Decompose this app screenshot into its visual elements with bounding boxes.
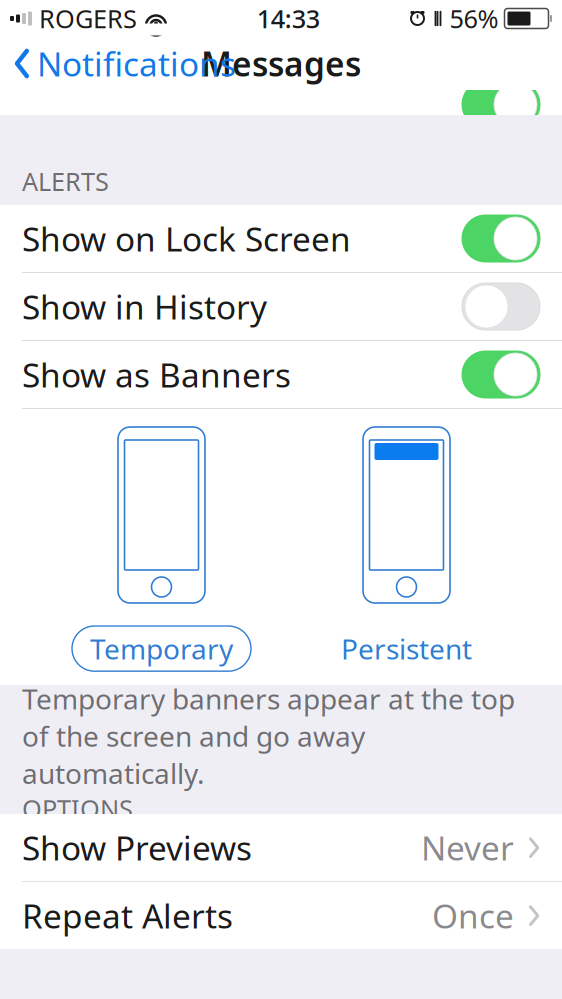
staticText: Never bbox=[421, 826, 514, 870]
button[interactable]: Notifications bbox=[0, 35, 236, 92]
staticText: OPTIONS bbox=[22, 792, 133, 825]
button[interactable]: Show as Banners bbox=[0, 341, 562, 408]
staticText: Repeat Alerts bbox=[22, 894, 233, 938]
staticText: Temporary bbox=[90, 630, 233, 667]
staticText: 56% bbox=[449, 2, 498, 35]
button[interactable]: Show Previews bbox=[0, 814, 562, 881]
staticText: Show Previews bbox=[22, 826, 252, 870]
button[interactable]: Show in History bbox=[0, 273, 562, 340]
button[interactable]: Show on Lock Screen bbox=[0, 205, 562, 272]
staticText: Notifications bbox=[37, 41, 236, 86]
button[interactable]: Temporary bbox=[72, 427, 251, 671]
staticText: Temporary banners appear at the top of t… bbox=[22, 680, 515, 792]
staticText: Messages bbox=[201, 41, 361, 86]
staticText: Persistent bbox=[341, 630, 472, 667]
staticText: Show as Banners bbox=[22, 352, 291, 397]
button[interactable]: Repeat Alerts bbox=[0, 882, 562, 949]
button[interactable]: Persistent bbox=[323, 427, 490, 671]
staticText: ALERTS bbox=[22, 164, 109, 198]
staticText: Show on Lock Screen bbox=[22, 216, 351, 261]
staticText: 14:33 bbox=[257, 2, 320, 35]
staticText: ROGERS bbox=[39, 2, 137, 35]
staticText: Show in History bbox=[22, 284, 267, 329]
staticText: Once bbox=[432, 894, 514, 938]
